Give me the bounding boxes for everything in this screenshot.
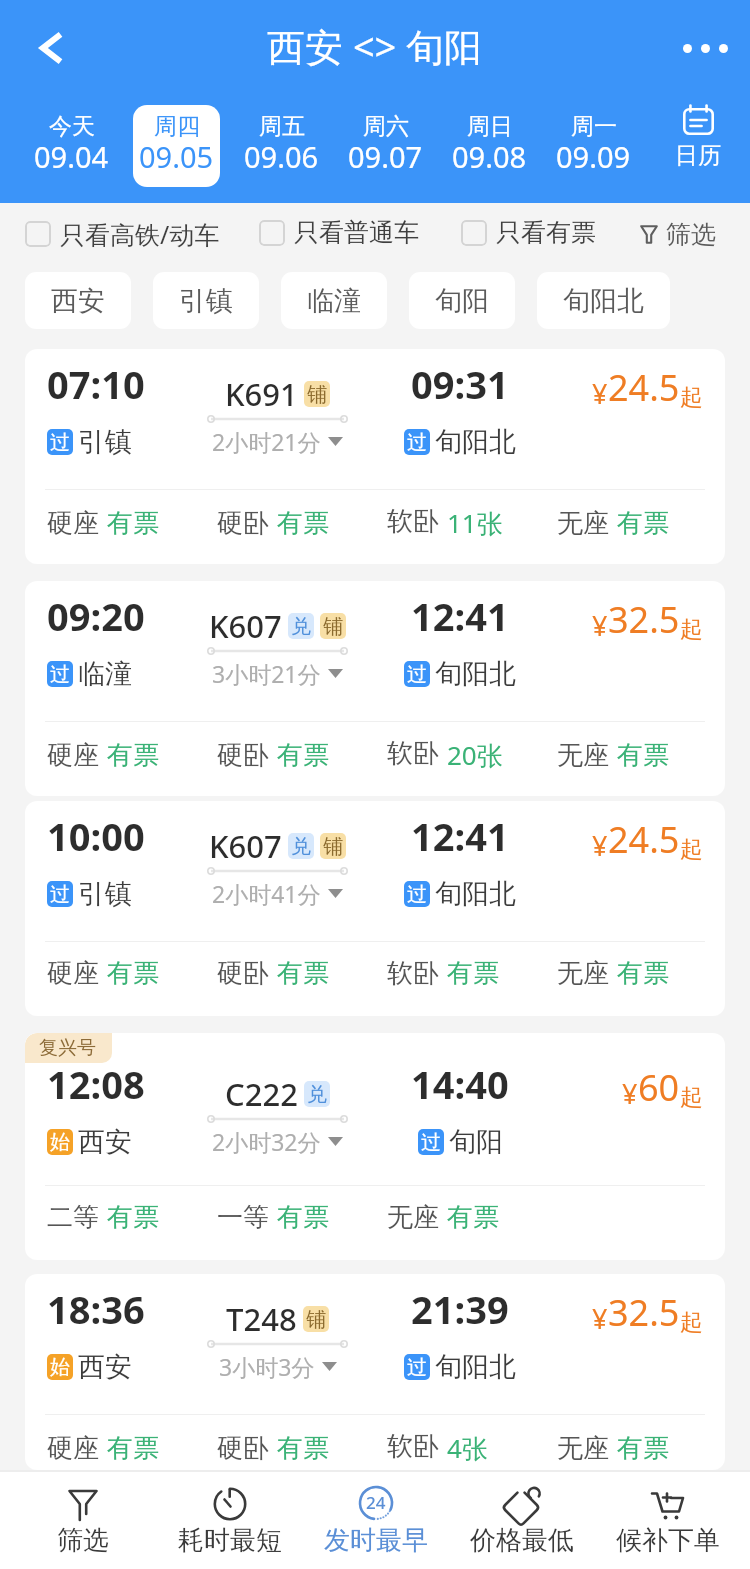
button[interactable]: 耗时最短 xyxy=(156,1472,303,1569)
staticText: 铺 xyxy=(323,834,343,859)
staticText: 有票 xyxy=(107,1432,159,1465)
staticText: 有票 xyxy=(617,507,669,540)
button[interactable]: Calendar xyxy=(645,101,750,191)
staticText: 2小时41分 xyxy=(212,878,321,909)
staticText: 硬卧 xyxy=(217,507,269,540)
button[interactable]: 复兴号 xyxy=(25,1033,725,1260)
staticText: 过 xyxy=(421,1130,441,1155)
button[interactable]: 18:36 xyxy=(25,1274,725,1470)
staticText: 3小时3分 xyxy=(219,1351,315,1382)
staticText: 有票 xyxy=(107,1201,159,1234)
button[interactable]: 旬阳 xyxy=(409,272,515,329)
button[interactable]: 候补下单 xyxy=(595,1472,741,1569)
staticText: 24.5 xyxy=(608,815,680,864)
staticText: 09.07 xyxy=(348,137,423,176)
button[interactable]: More options xyxy=(672,15,738,81)
staticText: 硬卧 xyxy=(217,1432,269,1465)
staticText: 无座 xyxy=(557,1432,609,1465)
staticText: 10:00 xyxy=(47,810,145,862)
staticText: 过 xyxy=(407,662,427,687)
staticText: 起 xyxy=(680,615,703,644)
staticText: 32.5 xyxy=(608,595,680,644)
button[interactable]: 09:20 xyxy=(25,581,725,796)
staticText: 09.06 xyxy=(244,137,319,176)
staticText: 09.04 xyxy=(34,137,109,176)
staticText: 有票 xyxy=(277,507,329,540)
staticText: 24 xyxy=(366,1491,386,1514)
staticText: ¥ xyxy=(592,375,608,412)
staticText: 11张 xyxy=(447,505,503,541)
staticText: 铺 xyxy=(323,614,343,639)
staticText: T248 xyxy=(226,1298,297,1340)
button[interactable]: 今天 xyxy=(28,105,115,187)
staticText: 起 xyxy=(680,1308,703,1337)
staticText: 周一 xyxy=(571,112,617,141)
button[interactable]: 旬阳北 xyxy=(537,272,670,329)
button[interactable]: 只看有票 xyxy=(453,209,604,256)
staticText: 始 xyxy=(50,1130,70,1155)
staticText: 起 xyxy=(680,835,703,864)
button[interactable]: 07:10 xyxy=(25,349,725,564)
staticText: 软卧 xyxy=(387,1430,439,1463)
staticText: 周四 xyxy=(154,112,200,141)
staticText: 有票 xyxy=(107,957,159,990)
button[interactable]: 只看普通车 xyxy=(251,209,427,256)
staticText: 西安 <> 旬阳 xyxy=(267,20,483,72)
staticText: 24.5 xyxy=(608,363,680,412)
staticText: 有票 xyxy=(107,739,159,772)
staticText: 二等 xyxy=(47,1201,99,1234)
staticText: 临潼 xyxy=(307,284,361,318)
button[interactable]: 周四 xyxy=(133,105,220,187)
staticText: 硬座 xyxy=(47,739,99,772)
staticText: K607 xyxy=(209,825,282,867)
button[interactable]: 10:00 xyxy=(25,801,725,1016)
button[interactable]: 西安 xyxy=(25,272,131,329)
staticText: 引镇 xyxy=(179,284,233,318)
staticText: 有票 xyxy=(617,957,669,990)
staticText: 复兴号 xyxy=(39,1036,96,1060)
staticText: 起 xyxy=(680,1083,703,1112)
staticText: 14:40 xyxy=(411,1058,509,1110)
staticText: 无座 xyxy=(387,1201,439,1234)
staticText: 引镇 xyxy=(78,877,132,911)
button[interactable]: 引镇 xyxy=(153,272,259,329)
staticText: 只看高铁/动车 xyxy=(60,217,220,251)
staticText: 旬阳北 xyxy=(435,425,516,459)
button[interactable]: 周一 xyxy=(550,105,637,187)
staticText: 12:41 xyxy=(411,590,509,642)
staticText: 始 xyxy=(50,1355,70,1380)
staticText: 旬阳 xyxy=(435,284,489,318)
button[interactable]: 筛选 xyxy=(9,1472,156,1569)
button[interactable]: 价格最低 xyxy=(449,1472,595,1569)
staticText: 硬座 xyxy=(47,507,99,540)
staticText: 软卧 xyxy=(387,505,439,538)
staticText: 3小时21分 xyxy=(212,658,321,689)
staticText: 60 xyxy=(638,1063,680,1112)
button[interactable]: 周六 xyxy=(342,105,429,187)
staticText: ¥ xyxy=(592,827,608,864)
button[interactable]: 筛选 xyxy=(626,211,730,258)
staticText: 周六 xyxy=(363,112,409,141)
staticText: 价格最低 xyxy=(470,1524,574,1557)
staticText: 一等 xyxy=(217,1201,269,1234)
button[interactable]: 只看高铁/动车 xyxy=(17,209,228,259)
staticText: 过 xyxy=(50,662,70,687)
staticText: 4张 xyxy=(447,1430,488,1466)
staticText: 无座 xyxy=(557,739,609,772)
button[interactable]: 临潼 xyxy=(281,272,387,329)
button[interactable]: Back xyxy=(18,15,84,81)
staticText: 日历 xyxy=(675,141,721,170)
staticText: 过 xyxy=(407,882,427,907)
staticText: 硬卧 xyxy=(217,739,269,772)
staticText: 09.05 xyxy=(139,137,214,176)
staticText: 有票 xyxy=(277,1432,329,1465)
staticText: 12:08 xyxy=(47,1058,145,1110)
button[interactable]: 周日 xyxy=(446,105,533,187)
staticText: 起 xyxy=(680,383,703,412)
staticText: 兑 xyxy=(291,834,311,859)
button[interactable]: 周五 xyxy=(238,105,325,187)
button[interactable]: 24 xyxy=(303,1472,449,1569)
staticText: 09:31 xyxy=(411,358,509,410)
staticText: 兑 xyxy=(291,614,311,639)
staticText: 有票 xyxy=(277,739,329,772)
